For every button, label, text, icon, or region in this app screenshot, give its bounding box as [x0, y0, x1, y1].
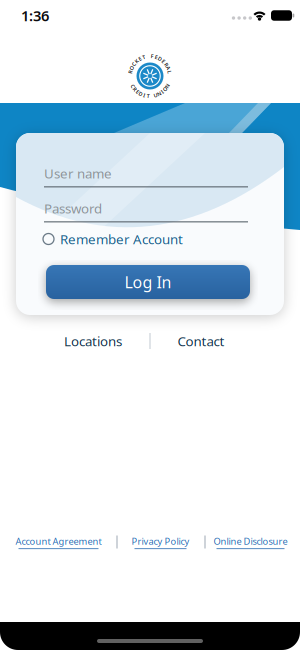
button[interactable]: Account Agreement [15, 535, 101, 549]
button[interactable]: Privacy Policy [131, 535, 189, 549]
staticText: Log In [124, 271, 171, 293]
staticText: N [157, 90, 161, 97]
staticText: T [147, 92, 150, 99]
staticText: U [154, 92, 158, 99]
button[interactable]: User name [44, 165, 248, 187]
staticText: Remember Account [60, 230, 183, 248]
staticText: N [165, 82, 169, 90]
button[interactable]: Online Disclosure [213, 535, 287, 549]
staticText: I [143, 92, 145, 99]
staticText: E [162, 58, 165, 65]
staticText: Password [44, 200, 102, 217]
staticText: Locations [64, 332, 122, 350]
staticText: K [135, 58, 138, 65]
button[interactable]: Password [44, 200, 248, 222]
staticText: O [163, 86, 167, 93]
staticText: Account Agreement [15, 535, 101, 547]
staticText: C [132, 61, 135, 68]
staticText: I [161, 88, 163, 95]
staticText: R [133, 86, 136, 93]
staticText: C [131, 82, 134, 90]
staticText: O [130, 65, 134, 72]
staticText: E [136, 88, 139, 95]
staticText: D [158, 55, 162, 62]
staticText: T [142, 53, 145, 61]
staticText: R [165, 61, 168, 68]
staticText: Privacy Policy [131, 535, 189, 547]
staticText: D [139, 90, 143, 97]
staticText: L [168, 69, 171, 76]
staticText: 1:36 [21, 6, 49, 25]
button[interactable]: Remember Account [43, 230, 203, 248]
button[interactable]: Locations [64, 332, 122, 350]
staticText: F [151, 53, 154, 60]
staticText: User name [44, 165, 112, 182]
button[interactable]: Log In [46, 265, 250, 299]
staticText: Contact [177, 332, 224, 350]
button[interactable]: Contact [177, 332, 224, 350]
staticText: Online Disclosure [213, 535, 287, 547]
staticText: E [155, 53, 158, 61]
staticText: R [129, 69, 132, 76]
staticText: E [138, 55, 141, 62]
staticText: A [166, 65, 170, 72]
